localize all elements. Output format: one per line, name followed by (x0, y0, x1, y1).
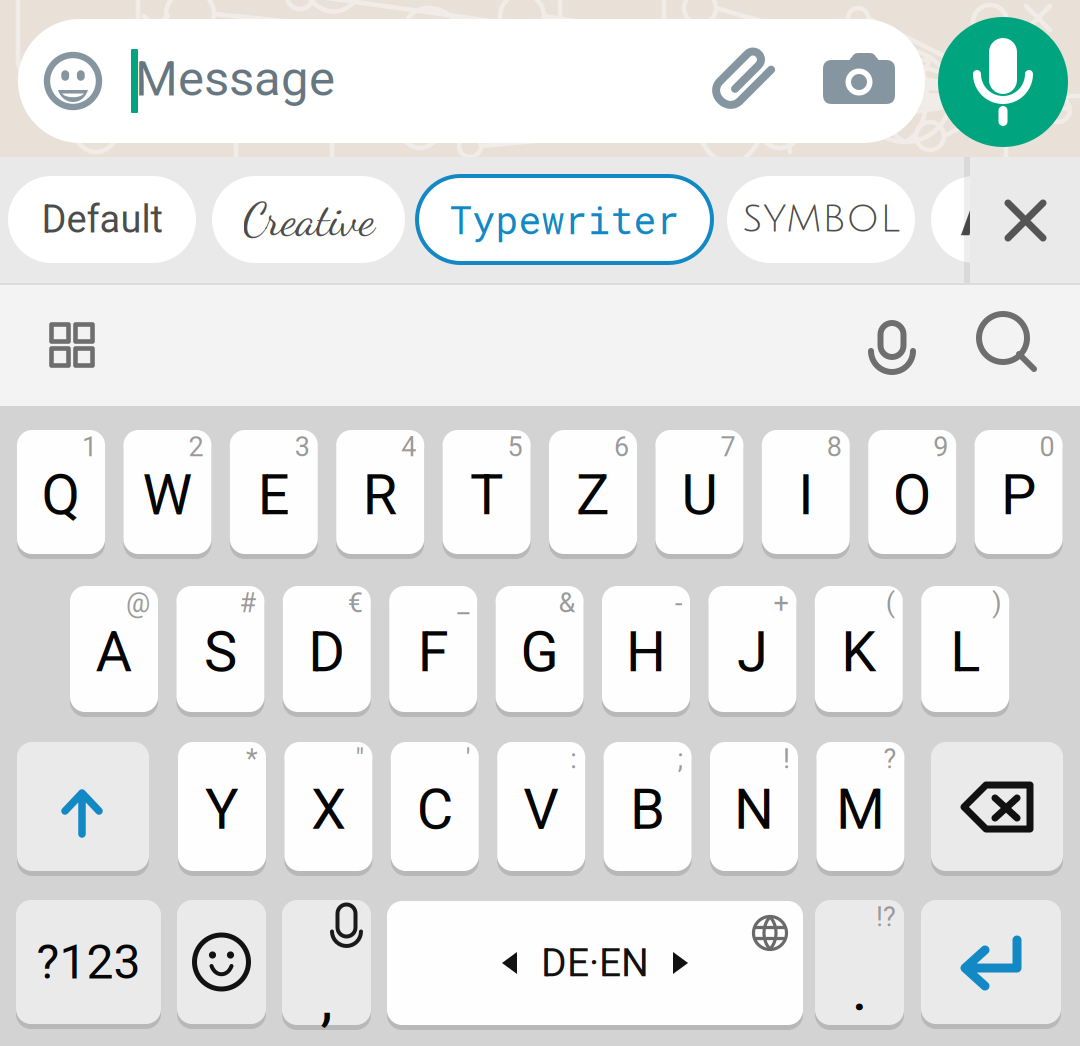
staticText: ) (992, 587, 1001, 619)
staticText: ( (886, 587, 895, 619)
staticText: " (355, 743, 364, 775)
button[interactable]: ? (816, 742, 904, 871)
button[interactable]: 6 (549, 430, 637, 554)
staticText: ? (883, 743, 896, 775)
button[interactable]: ! (710, 742, 798, 871)
button[interactable] (921, 900, 1061, 1024)
button[interactable]: ) (921, 586, 1009, 712)
button[interactable]: Camera (811, 33, 907, 129)
button[interactable]: ( (815, 586, 903, 712)
button[interactable]: 3 (230, 430, 318, 554)
button[interactable]: _ (389, 586, 477, 712)
staticText: Default (41, 197, 162, 242)
button[interactable]: € (283, 586, 371, 712)
staticText: Y (205, 777, 239, 842)
staticText: D (308, 619, 345, 685)
staticText: 6 (614, 431, 629, 463)
staticText: 8 (827, 431, 842, 463)
staticText: ?123 (36, 934, 140, 990)
button[interactable]: Attach (692, 33, 788, 129)
staticText: L (950, 619, 980, 685)
staticText: SYMBOL (742, 199, 900, 240)
staticText: T (470, 462, 503, 528)
staticText: U (681, 462, 717, 528)
button[interactable]: 5 (443, 430, 531, 554)
button[interactable]: ?123 (16, 900, 161, 1024)
staticText: V (523, 777, 559, 842)
staticText: 9 (933, 431, 948, 463)
button[interactable]: 0 (975, 430, 1063, 554)
staticText: @ (126, 587, 150, 619)
button[interactable]: 4 (336, 430, 424, 554)
button[interactable]: 2 (123, 430, 211, 554)
button[interactable]: : (497, 742, 585, 871)
button[interactable]: Default (8, 176, 196, 263)
staticText: 3 (295, 431, 310, 463)
button[interactable] (177, 900, 266, 1024)
staticText: 1 (82, 431, 97, 463)
button[interactable]: " (284, 742, 372, 871)
button[interactable]: 9 (868, 430, 956, 554)
staticText: A (95, 619, 132, 685)
button[interactable]: * (178, 742, 266, 871)
staticText: !? (876, 901, 896, 933)
staticText: , (320, 962, 332, 1035)
button[interactable]: ; (604, 742, 692, 871)
button[interactable]: - (602, 586, 690, 712)
button[interactable]: ' (391, 742, 479, 871)
staticText: 5 (508, 431, 523, 463)
staticText: Angular (961, 192, 1080, 246)
button[interactable]: @ (70, 586, 158, 712)
staticText: € (348, 587, 363, 619)
button[interactable] (931, 742, 1063, 871)
staticText: J (737, 619, 768, 685)
button[interactable]: + (708, 586, 796, 712)
button[interactable]: Emoji (30, 38, 116, 124)
button[interactable]: Voice input (847, 300, 937, 390)
staticText: 0 (1040, 431, 1055, 463)
staticText: O (893, 462, 932, 528)
staticText: Typewriter (449, 194, 679, 244)
staticText: R (363, 462, 398, 528)
button[interactable]: & (496, 586, 584, 712)
button[interactable]: Typewriter (417, 176, 712, 263)
button[interactable]: Search (963, 299, 1053, 389)
button[interactable]: !? (815, 900, 904, 1025)
staticText: F (418, 619, 449, 685)
staticText: S (204, 619, 237, 685)
staticText: K (841, 619, 876, 685)
button[interactable]: , (282, 900, 371, 1025)
button[interactable]: Voice message (938, 17, 1068, 147)
button[interactable]: Close (970, 157, 1080, 283)
staticText: : (570, 743, 577, 775)
button[interactable]: Creative (212, 176, 405, 263)
staticText: # (239, 587, 256, 619)
staticText: ' (466, 743, 471, 775)
button[interactable]: 8 (762, 430, 850, 554)
button[interactable]: SYMBOL (727, 176, 915, 263)
staticText: B (630, 777, 665, 842)
button[interactable] (17, 742, 149, 871)
staticText: + (773, 587, 788, 619)
button[interactable]: Space (387, 901, 803, 1025)
button[interactable]: 7 (655, 430, 743, 554)
staticText: C (417, 777, 453, 842)
staticText: I (798, 462, 813, 528)
staticText: DE·EN (541, 940, 649, 986)
staticText: M (836, 777, 885, 842)
staticText: _ (457, 587, 469, 619)
button[interactable]: # (176, 586, 264, 712)
staticText: - (675, 587, 682, 619)
staticText: X (311, 777, 346, 842)
staticText: Z (576, 462, 610, 528)
staticText: ; (678, 743, 684, 775)
staticText: 7 (720, 431, 735, 463)
button[interactable]: Keyboard layouts (27, 300, 117, 390)
staticText: W (142, 462, 192, 528)
staticText: * (246, 743, 258, 775)
staticText: G (521, 619, 559, 685)
staticText: 4 (401, 431, 416, 463)
button[interactable]: 1 (17, 430, 105, 554)
button[interactable]: Angular (931, 176, 1080, 263)
staticText: Creative (242, 192, 374, 247)
